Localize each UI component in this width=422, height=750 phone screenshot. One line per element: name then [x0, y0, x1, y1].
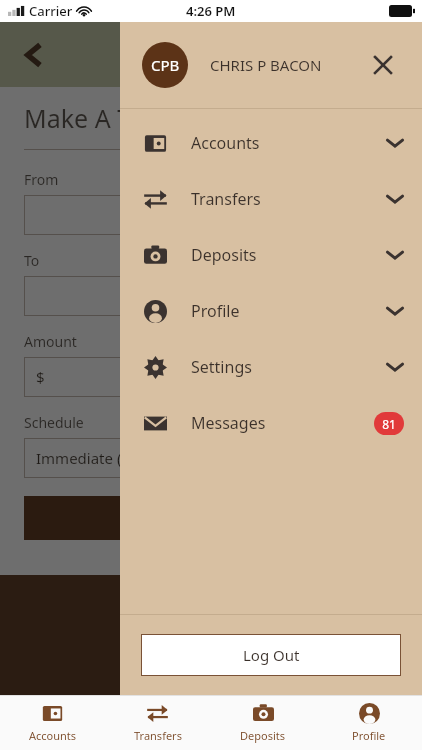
staticText: Profile: [191, 300, 386, 322]
staticText: $: [36, 367, 45, 387]
staticText: CHRIS P BACON: [210, 55, 366, 75]
staticText: From: [24, 170, 59, 189]
staticText: Transfers: [134, 728, 182, 743]
staticText: Schedule: [24, 413, 84, 432]
button[interactable]: Profile: [316, 696, 422, 750]
staticText: Transfers: [191, 188, 386, 210]
button[interactable]: Messages: [120, 395, 422, 451]
staticText: Immediate (One Time): [36, 448, 194, 468]
staticText: Messages: [191, 412, 374, 434]
staticText: To: [24, 251, 40, 270]
staticText: Log Out: [243, 645, 300, 665]
button[interactable]: Profile: [120, 283, 422, 339]
button[interactable]: Transfers: [120, 171, 422, 227]
staticText: Profile: [352, 728, 386, 743]
button[interactable]: Settings: [120, 339, 422, 395]
staticText: Deposits: [191, 244, 386, 266]
button[interactable]: Deposits: [210, 696, 316, 750]
staticText: Accounts: [29, 728, 77, 743]
staticText: Deposits: [240, 728, 286, 743]
staticText: Settings: [191, 356, 386, 378]
staticText: CPB: [151, 55, 180, 75]
staticText: Carrier: [29, 2, 73, 20]
button[interactable]: Accounts: [0, 696, 105, 750]
staticText: 4:26 PM: [186, 2, 236, 20]
staticText: Make A Transfer: [24, 101, 215, 135]
button[interactable]: Deposits: [120, 227, 422, 283]
button[interactable]: Transfers: [105, 696, 210, 750]
staticText: 81: [382, 416, 396, 432]
staticText: Amount: [24, 332, 77, 351]
staticText: Accounts: [191, 132, 386, 154]
staticText: Member FDIC: [172, 653, 250, 669]
button[interactable]: Log Out: [141, 634, 401, 676]
button[interactable]: CPB: [120, 22, 422, 108]
button[interactable]: Close menu: [366, 48, 400, 82]
button[interactable]: Accounts: [120, 115, 422, 171]
